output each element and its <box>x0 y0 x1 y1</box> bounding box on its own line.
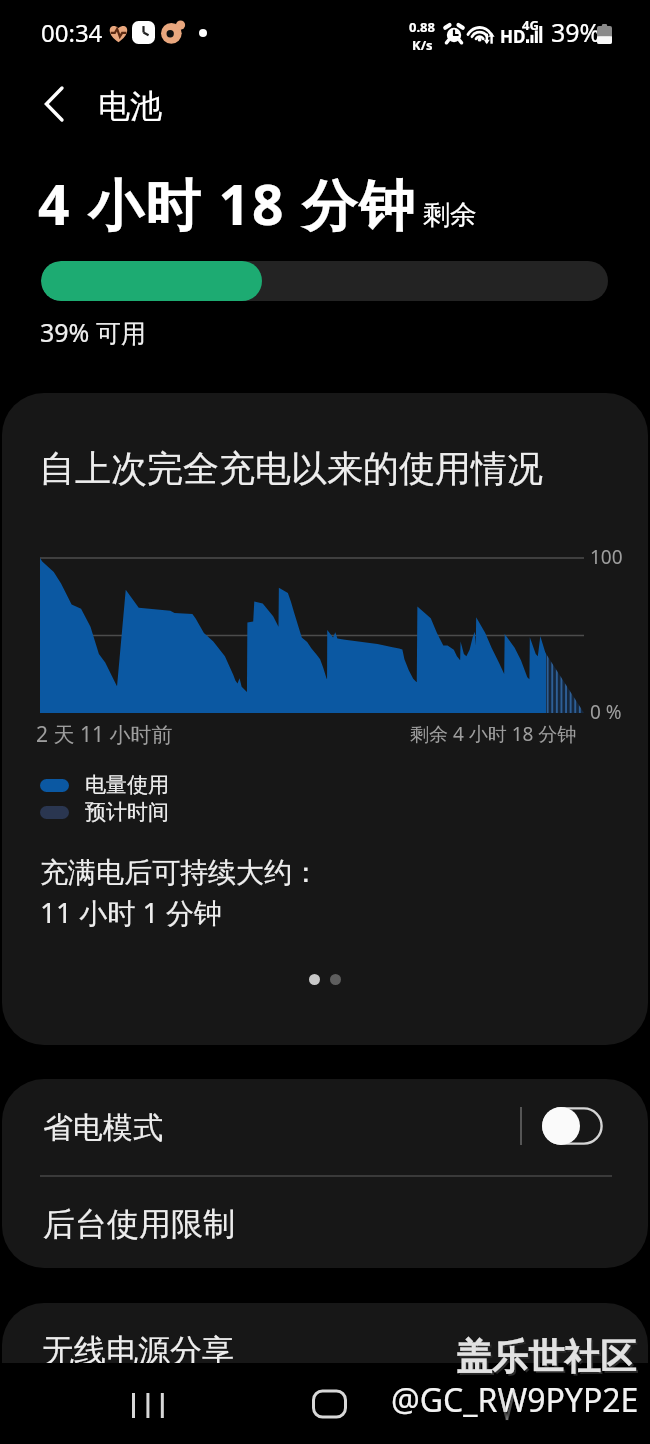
button[interactable]: Back <box>391 1363 641 1437</box>
staticText: 39% <box>551 15 601 49</box>
staticText: @GC_RW9PYP2E <box>391 1378 639 1422</box>
staticText: 电池 <box>98 86 162 126</box>
button[interactable]: 省电模式 <box>2 1079 648 1175</box>
staticText: 剩余 4 小时 18 分钟 <box>410 721 577 747</box>
staticText: 00:34 <box>41 16 103 49</box>
button[interactable]: 后台使用限制 <box>2 1176 648 1268</box>
staticText: 2 天 11 小时前 <box>36 720 173 749</box>
staticText: K/s <box>412 36 433 54</box>
staticText: 0.88 <box>409 18 435 36</box>
staticText: 4G <box>522 16 539 34</box>
staticText: 4 小时 18 分钟 <box>38 166 417 241</box>
staticText: 100 <box>590 544 623 570</box>
staticText: 无线电源分享 <box>42 1331 234 1371</box>
staticText: 盖乐世社区 <box>456 1334 636 1379</box>
staticText: 充满电后可持续大约： <box>40 855 320 890</box>
staticText: 剩余 <box>423 198 477 232</box>
button[interactable]: Recents <box>119 1368 175 1442</box>
staticText: 预计时间 <box>85 799 169 825</box>
staticText: 盖乐世社区 <box>458 1336 638 1381</box>
staticText: 11 小时 1 分钟 <box>40 893 222 931</box>
staticText: 省电模式 <box>43 1109 163 1147</box>
staticText: 后台使用限制 <box>43 1204 235 1244</box>
staticText: 0 % <box>590 699 622 725</box>
staticText: HD <box>500 25 526 48</box>
staticText: 电量使用 <box>85 772 169 798</box>
button[interactable]: Back <box>28 78 80 130</box>
staticText: 39% 可用 <box>40 315 146 349</box>
button[interactable]: 无线电源分享 <box>2 1303 648 1399</box>
button[interactable]: Home <box>301 1367 357 1441</box>
button[interactable]: 省电模式 <box>542 1107 603 1145</box>
staticText: 自上次完全充电以来的使用情况 <box>39 446 543 491</box>
